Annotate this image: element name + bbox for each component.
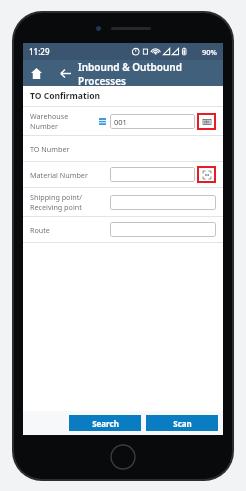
button[interactable]: Scan code (199, 168, 214, 181)
button[interactable]: Home (23, 60, 49, 86)
staticText: Route (30, 225, 50, 235)
button[interactable] (110, 222, 216, 237)
button[interactable]: Scan barcode (199, 115, 214, 128)
staticText: 90% (202, 47, 217, 57)
button[interactable]: Back (55, 63, 75, 83)
staticText: Shipping point/Receiving point (30, 192, 106, 212)
staticText: 001 (114, 117, 127, 127)
button[interactable] (110, 195, 216, 210)
staticText: Material Number (30, 170, 88, 180)
button[interactable]: Material Number (23, 162, 223, 187)
staticText: Scan (173, 418, 192, 429)
staticText: TO Number (30, 144, 70, 154)
button[interactable]: Search (69, 415, 141, 431)
button[interactable]: TO Number (23, 136, 223, 161)
button[interactable] (110, 167, 195, 182)
staticText: TO Confirmation (30, 90, 101, 102)
button[interactable]: 001 (110, 114, 195, 129)
button[interactable]: Warehouse Number (23, 107, 223, 135)
staticText: Warehouse Number (30, 111, 97, 131)
button[interactable]: Scan (146, 415, 218, 431)
button[interactable]: Route (23, 217, 223, 242)
staticText: Inbound & Outbound Processes (78, 60, 223, 86)
button[interactable]: Shipping point/Receiving point (23, 188, 223, 216)
staticText: 11:29 (29, 46, 50, 57)
staticText: Search (92, 418, 119, 429)
